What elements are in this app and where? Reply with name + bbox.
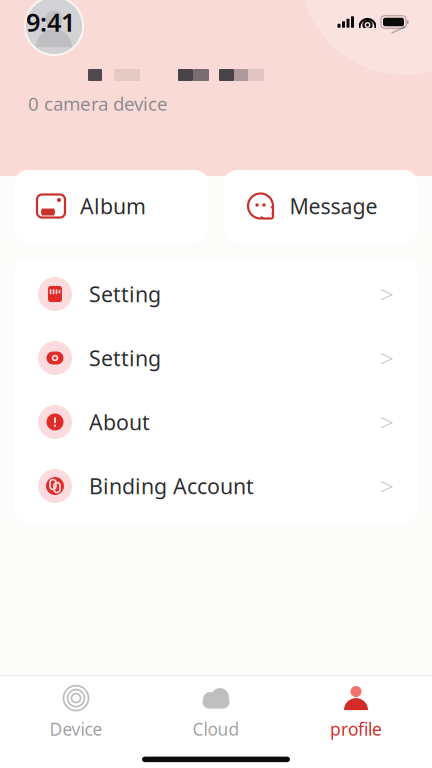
staticText: Message — [289, 192, 377, 220]
staticText: Binding Account — [89, 472, 254, 500]
button[interactable]: Message — [223, 170, 418, 242]
staticText: > — [380, 470, 394, 502]
staticText: > — [380, 278, 394, 310]
button[interactable]: Album — [14, 170, 208, 242]
button[interactable]: Setting — [14, 326, 418, 390]
button[interactable]: Setting — [14, 262, 418, 326]
staticText: Cloud — [192, 718, 239, 741]
staticText: Album — [80, 192, 146, 220]
button[interactable]: About — [14, 390, 418, 454]
button[interactable]: profile — [286, 676, 426, 749]
staticText: > — [380, 406, 394, 438]
staticText: Setting — [89, 280, 161, 308]
staticText: profile — [330, 718, 382, 741]
staticText: 0 camera device — [28, 91, 168, 116]
button[interactable]: Account details — [0, 0, 432, 55]
staticText: About — [89, 408, 150, 436]
staticText: > — [380, 342, 394, 374]
button[interactable]: Device — [6, 676, 146, 749]
button[interactable]: Cloud — [146, 676, 286, 749]
staticText: Device — [49, 718, 102, 741]
button[interactable]: Binding Account — [14, 454, 418, 518]
staticText: > — [390, 6, 407, 45]
staticText: 9:41 — [26, 5, 75, 39]
staticText: Setting — [89, 344, 161, 372]
